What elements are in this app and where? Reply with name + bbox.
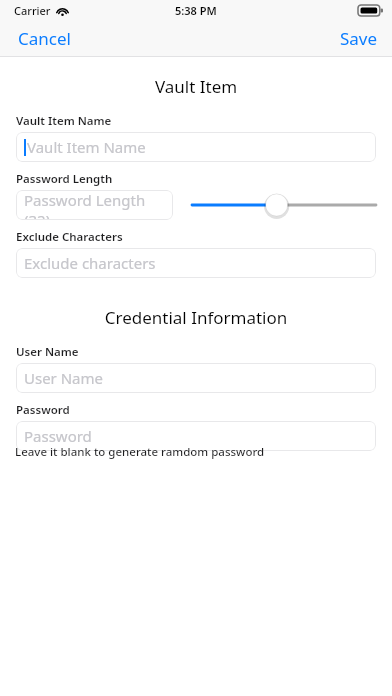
staticText: User Name: [16, 344, 79, 360]
button[interactable]: Password Length (32): [16, 190, 173, 220]
staticText: Password Length (32): [24, 190, 165, 220]
staticText: Save: [340, 27, 378, 50]
button[interactable]: Password length slider: [192, 190, 376, 220]
staticText: Password: [16, 402, 70, 418]
staticText: Password: [24, 426, 92, 446]
button[interactable]: Password: [16, 421, 376, 451]
staticText: Cancel: [18, 27, 71, 50]
staticText: Carrier: [14, 3, 51, 18]
staticText: Exclude Characters: [16, 229, 123, 245]
staticText: Exclude characters: [24, 253, 156, 273]
staticText: 5:38 PM: [175, 3, 217, 18]
staticText: User Name: [24, 368, 104, 388]
staticText: Vault Item Name: [16, 113, 112, 129]
button[interactable]: User Name: [16, 363, 376, 393]
button[interactable]: Cancel: [0, 21, 85, 56]
button[interactable]: Save: [326, 21, 392, 56]
staticText: Vault Item: [0, 75, 392, 98]
staticText: Vault Item Name: [27, 137, 146, 157]
staticText: Credential Information: [0, 306, 392, 329]
staticText: Leave it blank to generate ramdom passwo…: [15, 444, 265, 460]
button[interactable]: Exclude characters: [16, 248, 376, 278]
staticText: Password Length: [16, 171, 113, 187]
button[interactable]: Vault Item Name: [16, 132, 376, 162]
